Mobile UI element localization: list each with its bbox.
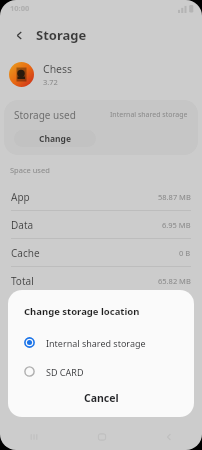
button[interactable]: Total [0, 267, 202, 294]
button[interactable]: Change [14, 130, 96, 147]
staticText: Storage used [14, 108, 76, 122]
staticText: Space used [10, 165, 50, 175]
staticText: 10:00 [10, 3, 30, 13]
staticText: Storage [36, 26, 87, 44]
staticText: Internal shared storage [110, 110, 188, 120]
button[interactable]: Cache [0, 239, 202, 266]
staticText: Change [39, 133, 72, 145]
staticText: Internal shared storage [46, 337, 146, 349]
button[interactable]: Recent apps [0, 424, 68, 450]
button[interactable]: Cancel [8, 385, 194, 411]
button[interactable]: Internal shared storage [8, 331, 194, 354]
staticText: Change storage location [24, 305, 140, 318]
staticText: 65.82 MB [158, 276, 191, 286]
button[interactable]: SD CARD [8, 360, 194, 383]
staticText: 3.72 [43, 77, 58, 87]
button[interactable]: Back [135, 424, 202, 450]
staticText: 6.95 MB [162, 220, 191, 230]
staticText: Chess [43, 62, 73, 76]
button[interactable]: Back [8, 24, 30, 46]
staticText: Total [11, 274, 34, 288]
staticText: Data [11, 218, 34, 232]
staticText: Cache [11, 246, 40, 260]
staticText: Cancel [84, 391, 119, 405]
staticText: SD CARD [46, 366, 84, 378]
staticText: 0 B [179, 248, 191, 258]
button[interactable]: Data [0, 211, 202, 238]
staticText: App [11, 190, 30, 204]
staticText: 58.87 MB [158, 192, 191, 202]
button[interactable]: Chess [9, 59, 193, 89]
button[interactable]: App [0, 183, 202, 210]
